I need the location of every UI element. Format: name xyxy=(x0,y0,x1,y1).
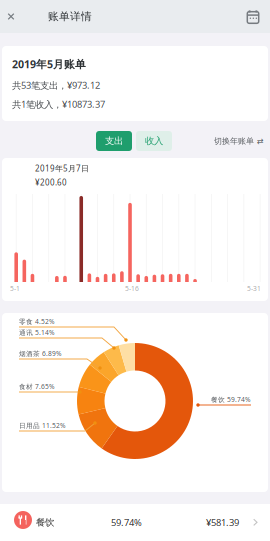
button[interactable]: 支出 xyxy=(96,131,132,151)
button[interactable]: 收入 xyxy=(136,131,172,151)
staticText: 切换年账单 ⇄ xyxy=(214,136,264,146)
staticText: ¥581.39 xyxy=(206,516,239,529)
staticText: 日用品 11.52% xyxy=(19,421,66,430)
staticText: 收入 xyxy=(145,135,163,147)
staticText: 餐饮 xyxy=(36,517,54,528)
staticText: 共53笔支出，¥973.12 xyxy=(12,79,100,91)
staticText: 支出 xyxy=(105,135,123,147)
staticText: ¥200.60 xyxy=(35,177,67,188)
staticText: 共1笔收入，¥10873.37 xyxy=(12,98,105,110)
staticText: 通讯 5.14% xyxy=(19,328,55,337)
button[interactable]: Close xyxy=(0,0,22,33)
staticText: 2019年5月7日 xyxy=(35,163,89,174)
staticText: 食材 7.65% xyxy=(19,382,55,391)
button[interactable]: Calendar xyxy=(241,0,265,33)
staticText: 59.74% xyxy=(111,516,142,529)
button[interactable]: 切换年账单 ⇄ xyxy=(210,131,264,151)
staticText: 5-16 xyxy=(125,284,139,293)
staticText: 零食 4.52% xyxy=(19,317,55,326)
staticText: 烟酒茶 6.89% xyxy=(19,349,62,358)
staticText: 餐饮 59.74% xyxy=(211,395,251,404)
staticText: 2019年5月账单 xyxy=(12,57,86,71)
staticText: 账单详情 xyxy=(48,10,92,23)
staticText: 5-1 xyxy=(10,284,20,293)
button[interactable]: 餐饮 xyxy=(0,504,270,541)
staticText: 5-31 xyxy=(247,284,261,293)
